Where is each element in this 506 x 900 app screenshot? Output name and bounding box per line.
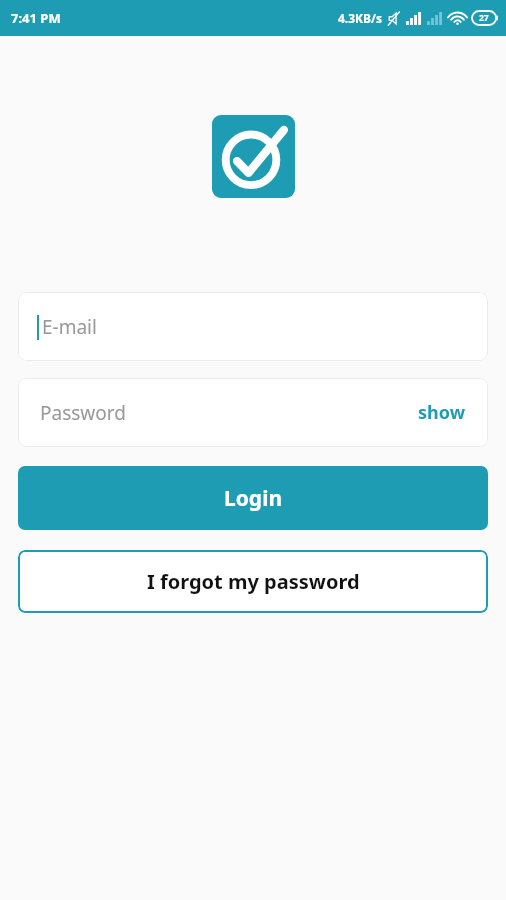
staticText: show	[418, 400, 466, 425]
staticText: 7:41 PM	[11, 9, 61, 27]
button[interactable]: I forgot my password	[18, 550, 488, 613]
button[interactable]: E-mail	[18, 292, 488, 361]
staticText: Password	[40, 400, 414, 426]
button[interactable]: show	[414, 396, 470, 429]
staticText: Login	[224, 484, 283, 513]
staticText: E-mail	[42, 314, 97, 340]
button[interactable]: Login	[18, 466, 488, 530]
staticText: 4.3KB/s	[338, 10, 383, 26]
staticText: I forgot my password	[147, 568, 360, 595]
button[interactable]: Password	[18, 378, 488, 447]
staticText: 27	[479, 12, 489, 24]
